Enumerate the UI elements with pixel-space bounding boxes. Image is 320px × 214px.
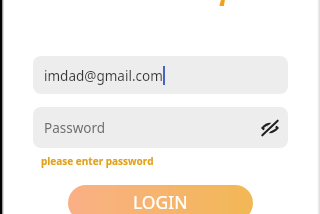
button[interactable]: LOGIN: [68, 185, 253, 214]
button[interactable]: Password: [33, 107, 288, 148]
staticText: imdad@gmail.com: [44, 67, 163, 85]
staticText: LOGIN: [133, 190, 188, 214]
button[interactable]: imdad@gmail.com: [33, 56, 288, 94]
staticText: Password: [44, 119, 106, 137]
staticText: please enter password: [41, 154, 154, 168]
button[interactable]: Toggle password visibility: [257, 115, 283, 141]
